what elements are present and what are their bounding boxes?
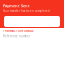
- staticText: TRANSACTION DETAILS: [3, 29, 33, 32]
- staticText: Your transfer has been completed: [3, 9, 50, 13]
- staticText: Reference number: [3, 34, 30, 38]
- staticText: Payment Sent: [3, 3, 30, 8]
